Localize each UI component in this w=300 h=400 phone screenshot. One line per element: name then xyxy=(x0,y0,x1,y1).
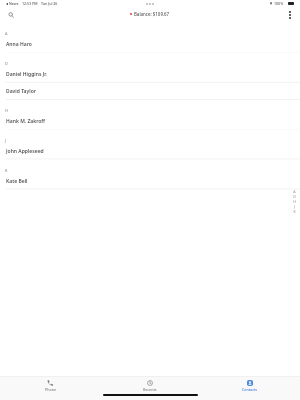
staticText: A xyxy=(293,189,296,194)
staticText: D xyxy=(293,194,296,199)
staticText: Balance: $109.67 xyxy=(134,11,170,17)
staticText: Phone xyxy=(45,387,56,391)
staticText: A xyxy=(5,31,8,36)
button[interactable]: Contacts xyxy=(200,377,300,391)
staticText: Recents xyxy=(143,387,157,391)
button[interactable]: Anna Haro xyxy=(0,36,300,53)
staticText: Hank M. Zakroff xyxy=(6,118,46,125)
staticText: J xyxy=(5,138,7,143)
button[interactable]: Phone xyxy=(0,377,100,391)
staticText: Anna Haro xyxy=(6,41,32,48)
staticText: Kate Bell xyxy=(6,178,28,185)
staticText: 100% xyxy=(274,1,284,6)
button[interactable]: Daniel Higgins Jr. xyxy=(0,66,300,83)
button[interactable]: John Appleseed xyxy=(0,143,300,160)
button[interactable]: Recents xyxy=(100,377,200,391)
staticText: 12:53 PM xyxy=(22,1,38,6)
staticText: K xyxy=(293,209,296,214)
button[interactable]: David Taylor xyxy=(0,83,300,100)
staticText: News xyxy=(9,1,19,6)
staticText: D xyxy=(5,61,8,66)
staticText: H xyxy=(5,108,8,113)
button[interactable]: Hank M. Zakroff xyxy=(0,113,300,130)
staticText: J xyxy=(294,204,295,209)
button[interactable]: Search xyxy=(4,9,18,23)
button[interactable]: More options xyxy=(283,8,297,22)
staticText: K xyxy=(5,168,8,173)
staticText: H xyxy=(293,199,296,204)
staticText: David Taylor xyxy=(6,88,36,95)
staticText: John Appleseed xyxy=(6,148,44,155)
staticText: Daniel Higgins Jr. xyxy=(6,71,47,78)
button[interactable]: Alphabet index xyxy=(292,189,297,214)
staticText: Tue Jul 26 xyxy=(41,1,58,6)
staticText: Contacts xyxy=(242,387,258,391)
button[interactable]: Kate Bell xyxy=(0,173,300,190)
